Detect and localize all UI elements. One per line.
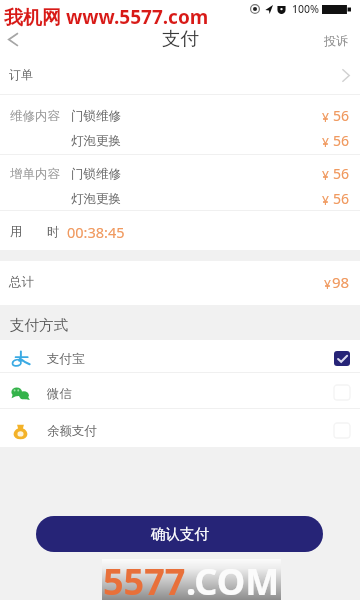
staticText: 确认支付 <box>151 525 209 543</box>
staticText: 00:38:45 <box>67 222 125 242</box>
staticText: 时 <box>47 224 60 240</box>
staticText: 支付 <box>162 27 199 50</box>
staticText: 总计 <box>9 274 34 290</box>
staticText: ¥ <box>322 167 329 183</box>
staticText: 98 <box>332 272 350 292</box>
staticText: 56 <box>333 189 350 208</box>
staticText: 维修内容 <box>10 108 60 124</box>
button[interactable]: 微信 <box>0 373 360 408</box>
staticText: 支付宝 <box>47 351 85 367</box>
staticText: 投诉 <box>324 33 348 48</box>
staticText: 100% <box>292 2 319 16</box>
staticText: 灯泡更换 <box>71 191 121 207</box>
button[interactable]: Back <box>0 22 26 57</box>
staticText: 56 <box>333 164 350 183</box>
staticText: 余额支付 <box>47 423 97 439</box>
staticText: ¥ <box>322 134 329 150</box>
staticText: 灯泡更换 <box>71 133 121 149</box>
staticText: 微信 <box>47 386 72 402</box>
staticText: 门锁维修 <box>71 166 121 182</box>
staticText: 门锁维修 <box>71 108 121 124</box>
staticText: 支付方式 <box>10 316 68 334</box>
staticText: .COM <box>186 557 280 598</box>
staticText: ¥ <box>322 192 329 208</box>
button[interactable]: 确认支付 <box>36 516 323 552</box>
button[interactable]: 订单 <box>0 57 360 94</box>
staticText: 订单 <box>9 67 33 82</box>
button[interactable]: 支付宝 <box>0 340 360 372</box>
staticText: ¥ <box>322 109 329 125</box>
staticText: 5577 <box>103 557 186 598</box>
staticText: 我机网 www.5577.com <box>4 4 209 30</box>
button[interactable]: 投诉 <box>312 22 360 57</box>
staticText: 56 <box>333 106 350 125</box>
button[interactable]: 余额支付 <box>0 409 360 447</box>
staticText: 56 <box>333 131 350 150</box>
staticText: 增单内容 <box>10 166 60 182</box>
staticText: 用 <box>10 224 23 240</box>
staticText: ¥ <box>324 276 331 292</box>
